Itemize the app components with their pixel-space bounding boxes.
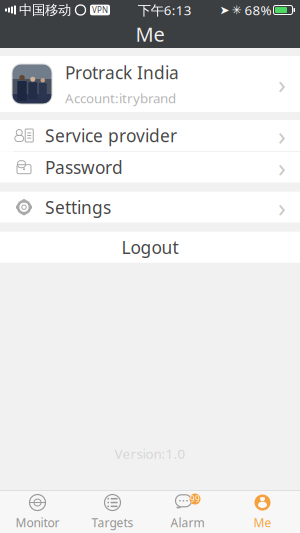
staticText: 99 xyxy=(190,494,200,504)
staticText: Protrack India xyxy=(65,61,179,84)
staticText: Service provider xyxy=(45,124,177,147)
staticText: ➤ xyxy=(219,3,229,17)
button[interactable]: Me xyxy=(225,491,300,533)
staticText: Logout xyxy=(121,236,178,259)
staticText: Alarm xyxy=(170,514,204,530)
button[interactable]: Logout xyxy=(0,232,300,263)
button[interactable]: Monitor xyxy=(0,491,75,533)
staticText: 下午6:13 xyxy=(138,1,192,19)
staticText: Monitor xyxy=(15,514,59,530)
staticText: Account:itrybrand xyxy=(65,89,176,107)
staticText: Settings xyxy=(45,196,111,219)
staticText: Password xyxy=(45,156,123,179)
staticText: 68% xyxy=(244,1,271,19)
staticText: ✳ xyxy=(231,3,241,17)
button[interactable]: Protrack India xyxy=(0,56,300,112)
staticText: › xyxy=(278,119,286,152)
staticText: › xyxy=(278,150,286,184)
button[interactable]: Targets xyxy=(75,491,150,533)
staticText: › xyxy=(278,67,286,101)
staticText: Version:1.0 xyxy=(114,445,185,462)
staticText: Targets xyxy=(91,514,133,530)
staticText: Me xyxy=(253,514,271,530)
staticText: 中国移动 xyxy=(19,2,71,18)
button[interactable]: Settings xyxy=(0,192,300,223)
button[interactable]: 99 xyxy=(150,491,225,533)
button[interactable]: Password xyxy=(0,152,300,183)
staticText: Me xyxy=(135,21,164,47)
staticText: › xyxy=(278,190,286,224)
staticText: VPN xyxy=(92,5,108,15)
button[interactable]: Service provider xyxy=(0,120,300,151)
